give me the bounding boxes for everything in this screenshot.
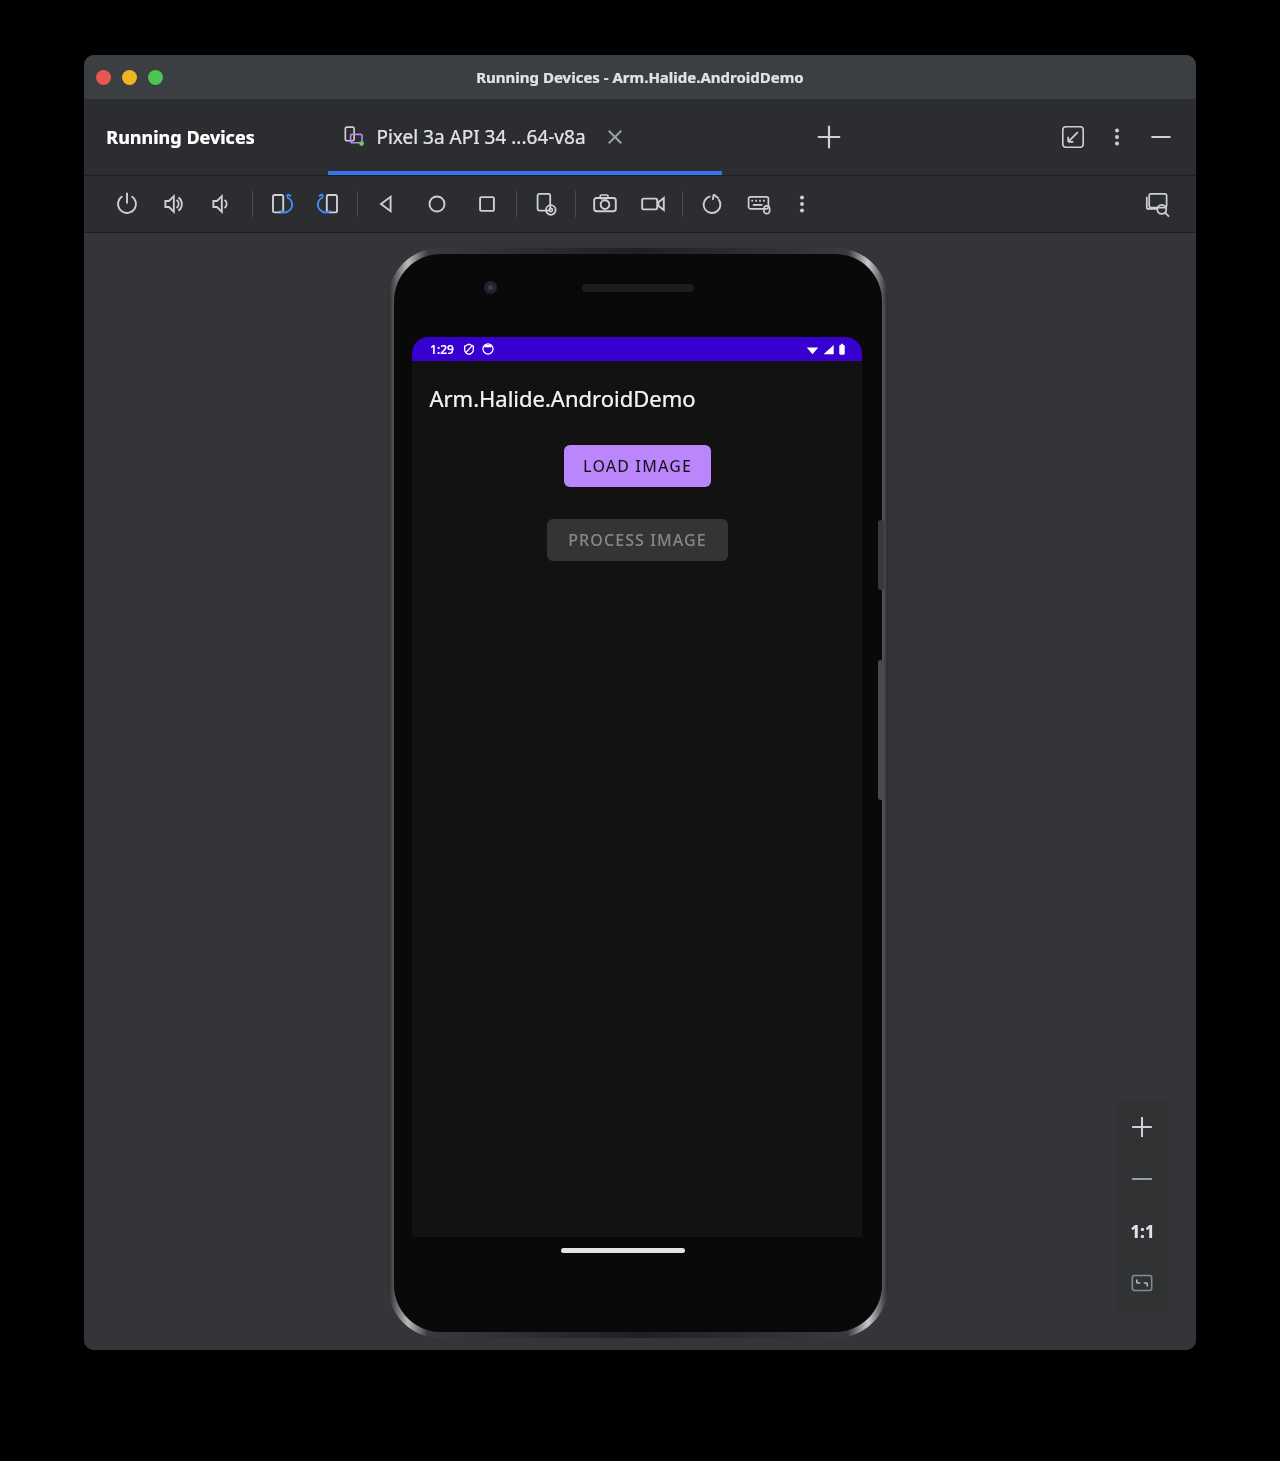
button[interactable]: Close tab: [602, 124, 628, 150]
button[interactable]: [122, 70, 137, 85]
button[interactable]: Rotate right: [313, 189, 343, 219]
button[interactable]: Home: [422, 189, 452, 219]
button[interactable]: Display mode: [1142, 189, 1172, 219]
button[interactable]: More: [789, 191, 815, 217]
staticText: LOAD IMAGE: [583, 455, 692, 477]
button[interactable]: LOAD IMAGE: [564, 445, 711, 487]
staticText: Pixel 3a API 34 ...64-v8a: [376, 124, 586, 150]
button[interactable]: Back: [372, 189, 402, 219]
staticText: 1:29: [430, 341, 454, 357]
staticText: PROCESS IMAGE: [568, 529, 707, 551]
button[interactable]: Zoom in: [1116, 1101, 1168, 1153]
other: Device: [344, 126, 366, 148]
button[interactable]: [148, 70, 163, 85]
button[interactable]: [96, 70, 111, 85]
button[interactable]: New tab: [812, 120, 846, 154]
button[interactable]: Device: [328, 99, 628, 175]
staticText: 1:1: [1130, 1220, 1155, 1243]
button[interactable]: Zoom to fit: [1116, 1257, 1168, 1309]
button[interactable]: Screenshot: [590, 189, 620, 219]
button[interactable]: Volume up: [160, 189, 190, 219]
button[interactable]: Zoom out: [1116, 1153, 1168, 1205]
button[interactable]: Power: [112, 189, 142, 219]
button[interactable]: Device settings: [531, 189, 561, 219]
button[interactable]: Restore: [697, 189, 727, 219]
staticText: Arm.Halide.AndroidDemo: [429, 383, 696, 413]
button[interactable]: Overview: [472, 189, 502, 219]
staticText: Running Devices: [106, 125, 255, 150]
button[interactable]: Minimize tool window: [1058, 122, 1088, 152]
button[interactable]: PROCESS IMAGE: [547, 519, 728, 561]
button[interactable]: Record screen: [638, 189, 668, 219]
button[interactable]: Hide: [1146, 122, 1176, 152]
button[interactable]: Hardware input: [745, 189, 775, 219]
staticText: Running Devices - Arm.Halide.AndroidDemo: [476, 67, 804, 87]
button[interactable]: Volume down: [208, 189, 238, 219]
button[interactable]: Zoom to actual size: [1116, 1205, 1168, 1257]
button[interactable]: Rotate left: [267, 189, 297, 219]
button[interactable]: More options: [1104, 124, 1130, 150]
